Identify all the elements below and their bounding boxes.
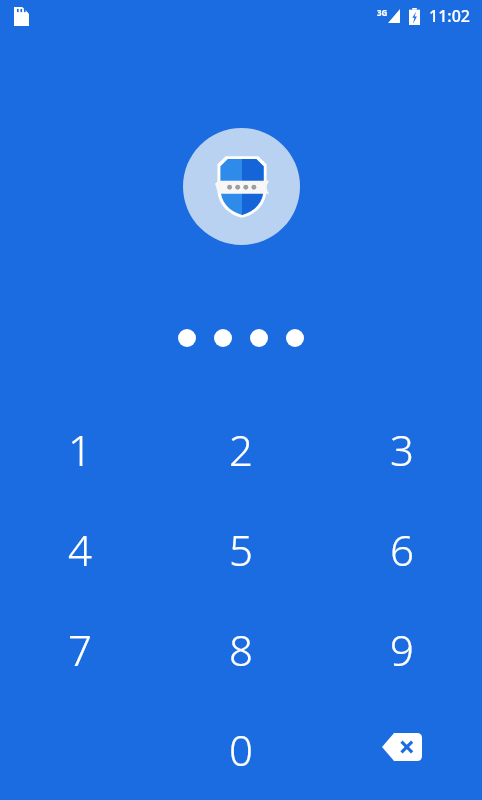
button[interactable]: 4: [0, 521, 160, 573]
staticText: 7: [68, 621, 92, 673]
staticText: 1: [68, 421, 92, 473]
button[interactable]: 8: [160, 621, 321, 673]
button[interactable]: 2: [160, 421, 321, 473]
button[interactable]: 6: [321, 521, 482, 573]
button[interactable]: 1: [0, 421, 160, 473]
button[interactable]: 3: [321, 421, 482, 473]
button[interactable]: 0: [160, 721, 321, 773]
staticText: 8: [229, 621, 253, 673]
staticText: 4: [68, 521, 92, 573]
button[interactable]: 7: [0, 621, 160, 673]
button[interactable]: Backspace: [321, 721, 482, 773]
staticText: 11:02: [429, 5, 470, 27]
staticText: 9: [390, 621, 414, 673]
staticText: 3G: [377, 7, 388, 18]
staticText: 3: [390, 421, 414, 473]
staticText: 6: [390, 521, 414, 573]
staticText: 2: [229, 421, 253, 473]
staticText: 0: [229, 721, 253, 773]
button[interactable]: 9: [321, 621, 482, 673]
staticText: 5: [229, 521, 253, 573]
button[interactable]: 5: [160, 521, 321, 573]
